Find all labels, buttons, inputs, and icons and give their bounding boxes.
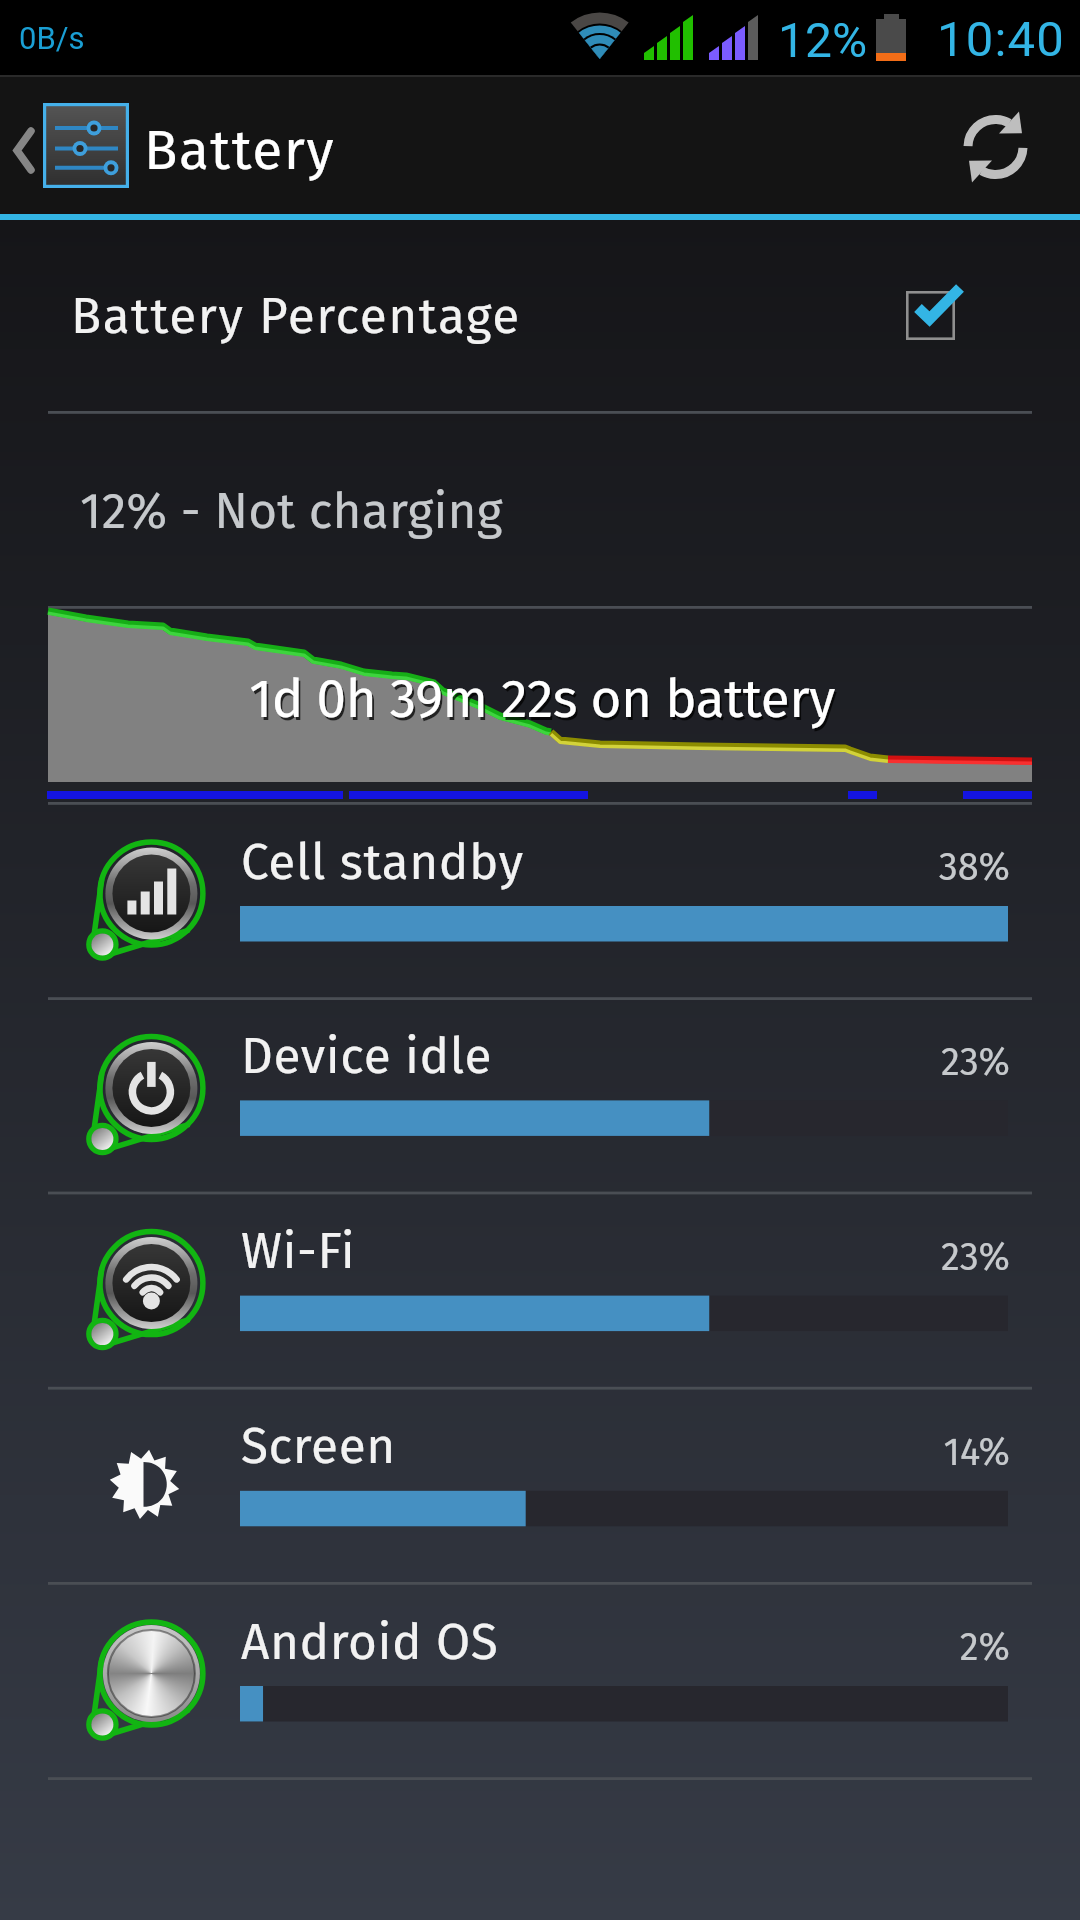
staticText: 12% - Not charging (80, 482, 503, 541)
staticText: Device idle (241, 1027, 493, 1086)
button[interactable]: Navigate up (0, 76, 140, 214)
staticText: Android OS (241, 1613, 499, 1672)
button[interactable]: Refresh (950, 90, 1060, 200)
staticText: 10:40 (937, 11, 1066, 68)
staticText: Screen (241, 1417, 396, 1476)
staticText: 38% (610, 844, 1010, 1920)
button[interactable] (0, 1582, 1080, 1777)
button[interactable] (0, 222, 1080, 412)
staticText: 14% (610, 1429, 1010, 1920)
staticText: Cell standby (241, 833, 524, 892)
staticText: Wi-Fi (241, 1222, 356, 1281)
staticText: 23% (610, 1234, 1010, 1920)
staticText: 1d 0h 39m 22s on battery (92, 667, 992, 1920)
button[interactable] (0, 996, 1080, 1191)
button[interactable] (0, 802, 1080, 997)
staticText: 1d 0h 39m 22s on battery (94, 670, 994, 1920)
staticText: 0B/s (19, 20, 85, 56)
staticText: Battery Percentage (71, 287, 521, 346)
button[interactable] (0, 1192, 1080, 1387)
staticText: Battery (144, 118, 336, 184)
staticText: 12% (778, 12, 868, 68)
staticText: 23% (610, 1039, 1010, 1920)
staticText: 2% (610, 1624, 1010, 1920)
button[interactable] (0, 1387, 1080, 1582)
